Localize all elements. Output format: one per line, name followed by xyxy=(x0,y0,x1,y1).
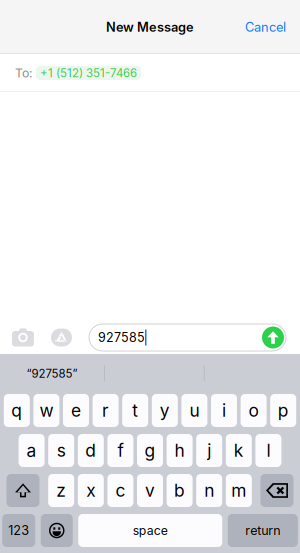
staticText: return xyxy=(245,523,280,538)
button[interactable]: Send xyxy=(262,326,284,348)
staticText: c xyxy=(115,480,125,501)
staticText: u xyxy=(189,400,199,421)
staticText: j xyxy=(207,440,211,461)
staticText: Cancel xyxy=(245,19,286,35)
button[interactable]: e xyxy=(63,394,89,427)
button[interactable]: j xyxy=(196,434,222,467)
button[interactable]: o xyxy=(241,394,267,427)
button[interactable]: c xyxy=(107,474,133,507)
button[interactable]: a xyxy=(19,434,45,467)
button[interactable]: Shift xyxy=(6,474,39,507)
staticText: m xyxy=(231,480,246,501)
staticText: l xyxy=(266,440,270,461)
button[interactable]: 123 xyxy=(2,514,35,547)
staticText: r xyxy=(102,400,109,421)
staticText: “927585” xyxy=(26,367,77,380)
button[interactable]: p xyxy=(270,394,296,427)
button[interactable]: g xyxy=(137,434,163,467)
staticText: f xyxy=(117,440,123,461)
staticText: space xyxy=(133,523,168,538)
staticText: e xyxy=(71,400,81,421)
button[interactable]: z xyxy=(48,474,74,507)
staticText: o xyxy=(249,400,259,421)
button[interactable]: Delete xyxy=(260,474,293,507)
staticText: v xyxy=(145,480,155,501)
button[interactable]: b xyxy=(167,474,193,507)
button[interactable]: w xyxy=(33,394,59,427)
staticText: w xyxy=(39,400,53,421)
button[interactable]: l xyxy=(255,434,281,467)
staticText: +1 (512) 351-7466 xyxy=(40,66,137,80)
button[interactable]: y xyxy=(152,394,178,427)
button[interactable]: Apps xyxy=(51,327,72,348)
button[interactable]: Cancel xyxy=(245,10,300,44)
button[interactable]: return xyxy=(228,514,298,547)
button[interactable]: Emoji xyxy=(41,514,73,547)
staticText: z xyxy=(56,480,66,501)
button[interactable]: i xyxy=(211,394,237,427)
staticText: i xyxy=(222,400,226,421)
staticText: b xyxy=(174,480,185,501)
button[interactable]: x xyxy=(78,474,104,507)
staticText: s xyxy=(57,440,66,461)
staticText: y xyxy=(160,400,170,421)
button[interactable]: q xyxy=(4,394,30,427)
button[interactable]: d xyxy=(78,434,104,467)
staticText: k xyxy=(234,440,244,461)
staticText: p xyxy=(278,400,289,421)
button[interactable]: space xyxy=(78,514,222,547)
button[interactable]: s xyxy=(48,434,74,467)
staticText: a xyxy=(27,440,37,461)
button[interactable]: Take photo xyxy=(11,328,35,347)
staticText: New Message xyxy=(106,19,194,35)
staticText: g xyxy=(144,440,155,461)
button[interactable]: f xyxy=(107,434,133,467)
staticText: h xyxy=(175,440,185,461)
staticText: 927585 xyxy=(98,330,145,345)
button[interactable]: r xyxy=(93,394,119,427)
button[interactable]: h xyxy=(167,434,193,467)
staticText: x xyxy=(86,480,95,501)
button[interactable]: k xyxy=(226,434,252,467)
button[interactable]: m xyxy=(226,474,252,507)
button[interactable]: t xyxy=(122,394,148,427)
staticText: 123 xyxy=(8,523,29,538)
button[interactable]: v xyxy=(137,474,163,507)
button[interactable]: u xyxy=(181,394,207,427)
button[interactable]: n xyxy=(196,474,222,507)
staticText: To: xyxy=(15,66,33,80)
staticText: q xyxy=(11,400,22,421)
staticText: n xyxy=(204,480,214,501)
staticText: d xyxy=(85,440,96,461)
staticText: t xyxy=(132,400,138,421)
